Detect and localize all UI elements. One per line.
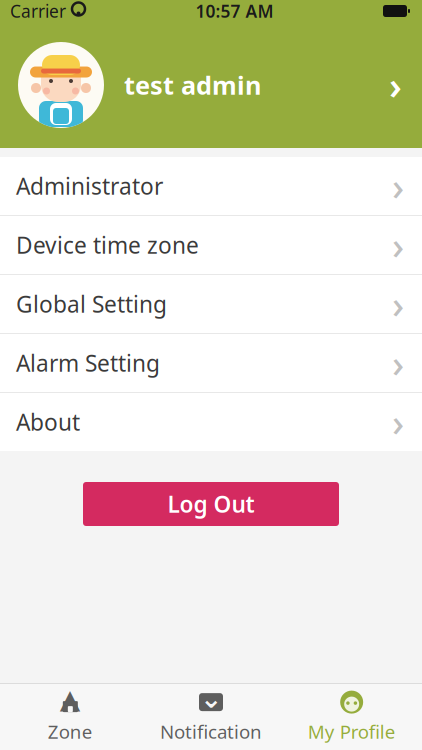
staticText: Device time zone [16, 230, 199, 260]
staticText: › [392, 161, 404, 211]
staticText: Zone [48, 719, 93, 744]
staticText: Log Out [167, 489, 254, 519]
button[interactable]: ▲ [0, 684, 141, 750]
button[interactable]: Log Out [83, 482, 339, 526]
staticText: › [392, 279, 404, 329]
button[interactable]: About [0, 393, 422, 451]
staticText: › [392, 220, 404, 270]
staticText: Alarm Setting [16, 348, 160, 378]
staticText: › [392, 338, 404, 388]
button[interactable]: My Profile [281, 684, 422, 750]
staticText: My Profile [308, 719, 396, 744]
button[interactable]: Device time zone [0, 216, 422, 274]
staticText: › [392, 397, 404, 447]
button[interactable]: test admin [0, 22, 422, 148]
button[interactable]: ⌄ [141, 684, 281, 750]
staticText: ▲ [60, 684, 81, 714]
staticText: test admin [124, 68, 261, 102]
button[interactable]: Global Setting [0, 275, 422, 333]
staticText: ⌄ [200, 683, 222, 714]
staticText: Administrator [16, 171, 163, 201]
staticText: Global Setting [16, 289, 167, 319]
button[interactable]: Alarm Setting [0, 334, 422, 392]
staticText: 10:57 AM [195, 0, 273, 22]
staticText: Notification [160, 719, 262, 744]
staticText: About [16, 407, 80, 437]
staticText: › [389, 60, 402, 110]
button[interactable]: Administrator [0, 157, 422, 215]
staticText: Carrier [10, 0, 66, 22]
